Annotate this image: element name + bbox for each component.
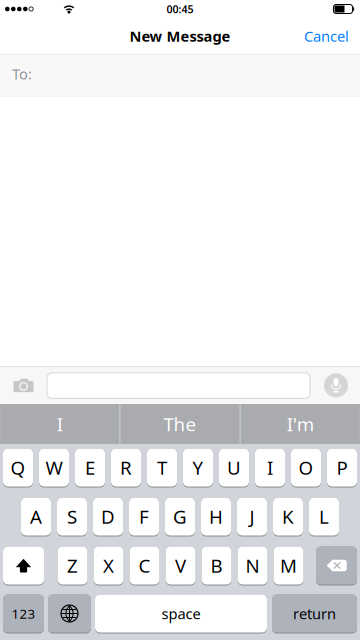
button[interactable]: Camera: [0, 367, 47, 404]
staticText: X: [103, 553, 114, 578]
button[interactable]: Y: [183, 448, 213, 487]
button[interactable]: The: [120, 404, 240, 444]
staticText: D: [101, 504, 115, 529]
staticText: U: [227, 455, 241, 480]
button[interactable]: V: [165, 546, 195, 585]
button[interactable]: O: [291, 448, 321, 487]
button[interactable]: D: [93, 497, 123, 536]
staticText: E: [85, 455, 95, 480]
staticText: K: [282, 504, 294, 529]
button[interactable]: Dictate: [324, 373, 348, 397]
staticText: I'm: [287, 412, 314, 436]
button[interactable]: J: [237, 497, 267, 536]
staticText: Cancel: [304, 26, 349, 46]
staticText: F: [139, 504, 149, 529]
staticText: 00:45: [166, 2, 193, 16]
staticText: 123: [11, 605, 35, 622]
button[interactable]: Cancel: [304, 26, 349, 46]
button[interactable]: K: [273, 497, 303, 536]
staticText: S: [67, 504, 77, 529]
staticText: J: [249, 504, 254, 529]
button[interactable]: Shift: [3, 546, 44, 585]
button[interactable]: Next keyboard: [48, 594, 91, 633]
staticText: The: [163, 412, 196, 436]
staticText: T: [157, 455, 167, 480]
button[interactable]: A: [21, 497, 51, 536]
staticText: space: [161, 604, 200, 623]
staticText: A: [30, 504, 42, 529]
staticText: M: [280, 553, 297, 578]
staticText: return: [293, 604, 336, 623]
button[interactable]: Delete: [316, 546, 357, 585]
staticText: I: [57, 412, 63, 436]
staticText: R: [120, 455, 132, 480]
staticText: G: [173, 504, 187, 529]
button[interactable]: I: [255, 448, 285, 487]
staticText: V: [175, 553, 186, 578]
staticText: Q: [10, 455, 25, 480]
button[interactable]: M: [273, 546, 303, 585]
button[interactable]: X: [93, 546, 123, 585]
staticText: To:: [12, 64, 32, 84]
staticText: O: [298, 455, 313, 480]
button[interactable]: E: [75, 448, 105, 487]
button[interactable]: F: [129, 497, 159, 536]
button[interactable]: I'm: [241, 404, 360, 444]
staticText: L: [319, 504, 329, 529]
button[interactable]: U: [219, 448, 249, 487]
button[interactable]: W: [39, 448, 69, 487]
button[interactable]: space: [95, 594, 267, 633]
staticText: New Message: [129, 26, 230, 46]
staticText: P: [336, 455, 347, 480]
button[interactable]: H: [201, 497, 231, 536]
button[interactable]: 123: [3, 594, 44, 633]
button[interactable]: S: [57, 497, 87, 536]
button[interactable]: Q: [3, 448, 33, 487]
staticText: B: [210, 553, 222, 578]
button[interactable]: I: [0, 404, 119, 444]
button[interactable]: N: [237, 546, 267, 585]
button[interactable]: B: [201, 546, 231, 585]
button[interactable]: L: [309, 497, 339, 536]
button[interactable]: To: [0, 55, 360, 96]
staticText: I: [267, 455, 273, 480]
button[interactable]: return: [272, 594, 357, 633]
staticText: N: [245, 553, 259, 578]
button[interactable]: G: [165, 497, 195, 536]
staticText: Z: [67, 553, 78, 578]
staticText: W: [45, 455, 62, 480]
button[interactable]: P: [327, 448, 357, 487]
staticText: Y: [192, 455, 203, 480]
button[interactable]: T: [147, 448, 177, 487]
button[interactable]: Z: [57, 546, 87, 585]
button[interactable]: C: [129, 546, 159, 585]
staticText: C: [138, 553, 150, 578]
button[interactable]: R: [111, 448, 141, 487]
button[interactable]: Message field: [47, 373, 310, 398]
staticText: H: [209, 504, 223, 529]
